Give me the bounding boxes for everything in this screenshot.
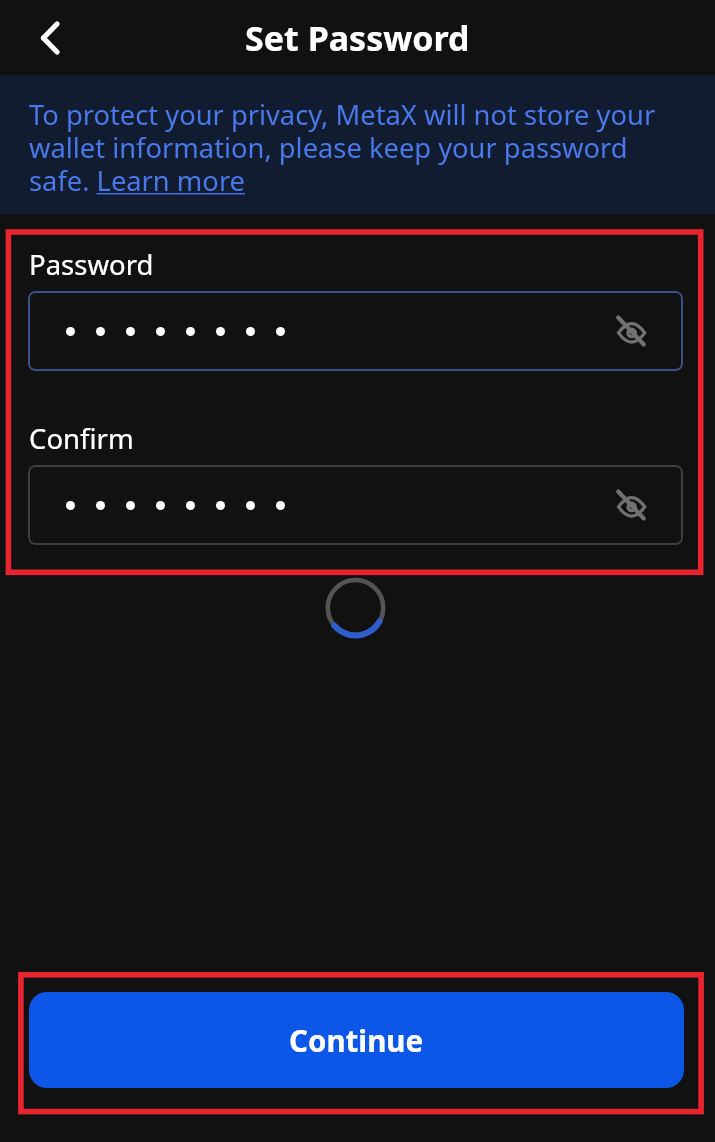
button[interactable]: To protect your privacy, MetaX will not …: [0, 75, 715, 214]
button[interactable]: Confirm password: [28, 465, 683, 545]
button[interactable]: Show password: [607, 481, 655, 529]
staticText: Set Password: [245, 15, 470, 61]
staticText: Confirm: [29, 420, 134, 457]
staticText: Continue: [289, 1020, 424, 1060]
button[interactable]: Password: [28, 291, 683, 371]
button[interactable]: Back: [24, 12, 76, 64]
staticText: Password: [29, 246, 154, 283]
button[interactable]: Continue: [29, 992, 684, 1088]
button[interactable]: Show password: [607, 307, 655, 355]
staticText: To protect your privacy, MetaX will not …: [29, 96, 674, 199]
